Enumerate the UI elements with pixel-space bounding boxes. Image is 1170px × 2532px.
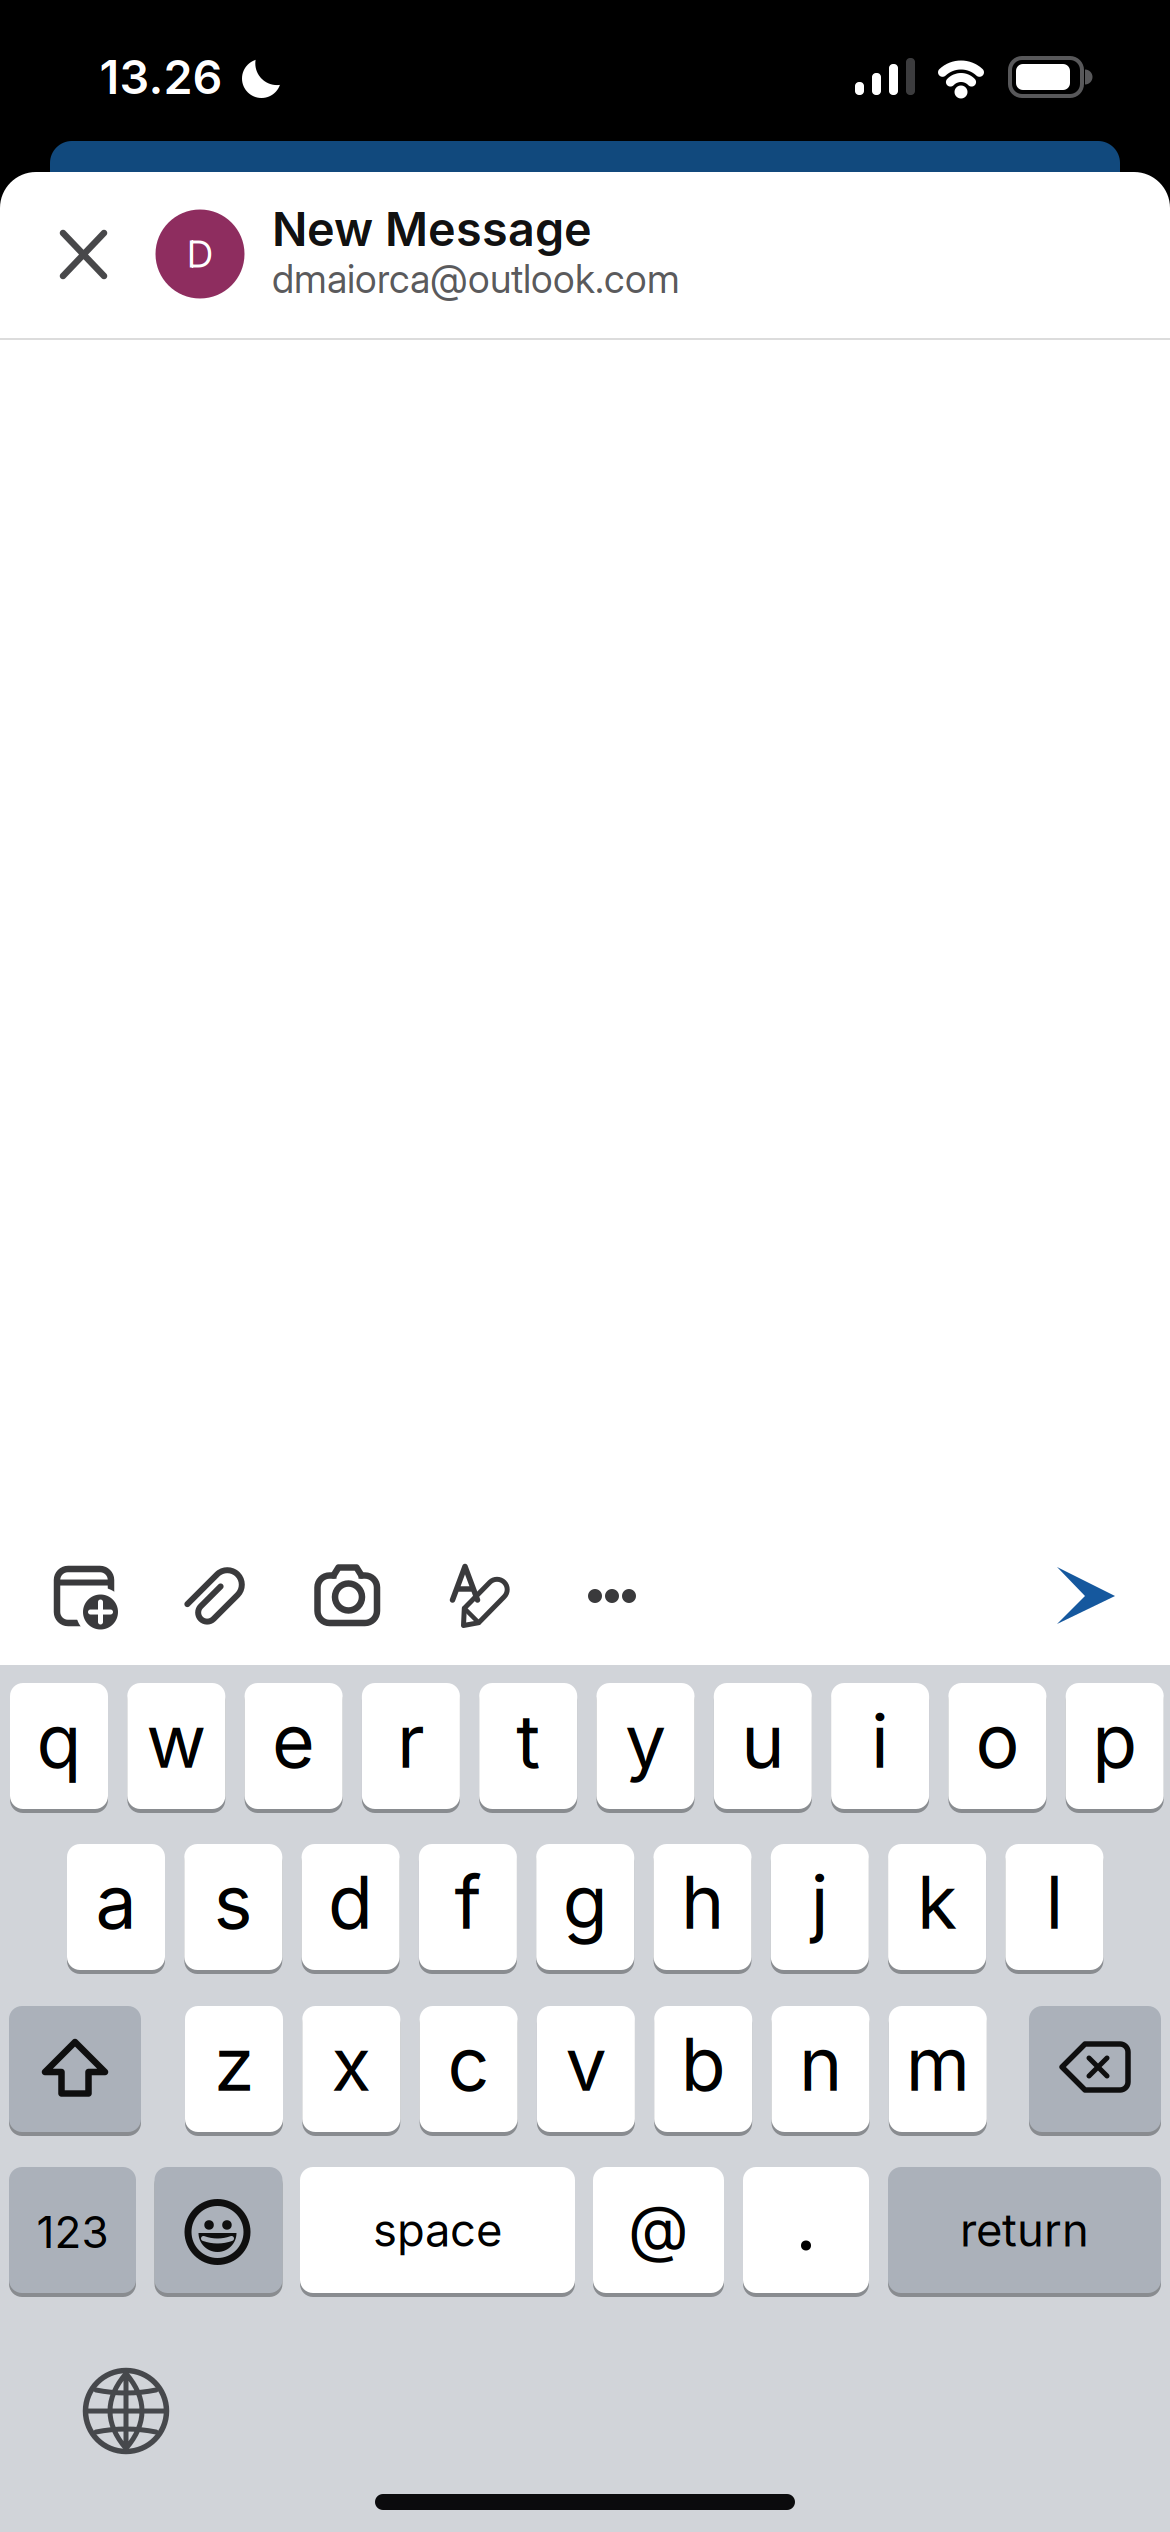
button[interactable]: h (653, 1842, 751, 1972)
staticText: p (1092, 1698, 1137, 1784)
staticText: o (975, 1698, 1019, 1784)
button[interactable]: f (419, 1842, 517, 1972)
button[interactable]: w (127, 1681, 225, 1811)
button[interactable]: n (771, 2004, 869, 2134)
staticText: k (917, 1859, 957, 1945)
button[interactable]: o (948, 1681, 1046, 1811)
staticText: i (871, 1698, 889, 1784)
staticText: h (681, 1859, 724, 1945)
staticText: q (36, 1698, 81, 1784)
staticText: c (448, 2021, 490, 2107)
button[interactable]: Format text (435, 1552, 525, 1642)
staticText: e (272, 1698, 315, 1784)
button[interactable]: . (743, 2165, 869, 2295)
button[interactable]: p (1066, 1681, 1164, 1811)
staticText: 13.26 (99, 49, 222, 105)
button[interactable]: q (10, 1681, 108, 1811)
staticText: b (681, 2021, 726, 2107)
button[interactable]: c (420, 2004, 518, 2134)
button[interactable]: j (771, 1842, 869, 1972)
button[interactable]: @ (593, 2165, 724, 2295)
button[interactable]: s (184, 1842, 282, 1972)
button[interactable]: Delete (1029, 2004, 1161, 2134)
button[interactable]: l (1005, 1842, 1103, 1972)
staticText: return (960, 2203, 1089, 2257)
staticText: w (146, 1698, 206, 1784)
button[interactable]: More compose actions (566, 1551, 656, 1641)
staticText: l (1045, 1859, 1063, 1945)
button[interactable]: i (831, 1681, 929, 1811)
button[interactable]: Take photo (302, 1551, 392, 1641)
button[interactable]: z (185, 2004, 283, 2134)
staticText: x (331, 2021, 371, 2107)
staticText: r (397, 1698, 425, 1784)
button[interactable]: Emoji (154, 2165, 282, 2295)
button[interactable]: Switch keyboard (85, 2370, 167, 2452)
staticText: g (563, 1859, 608, 1945)
button[interactable]: g (536, 1842, 634, 1972)
button[interactable]: r (362, 1681, 460, 1811)
staticText: a (95, 1859, 136, 1945)
staticText: m (906, 2021, 970, 2107)
staticText: u (741, 1698, 784, 1784)
button[interactable]: Attach file (170, 1550, 262, 1642)
staticText: d (328, 1859, 373, 1945)
button[interactable]: x (302, 2004, 400, 2134)
staticText: s (214, 1859, 253, 1945)
button[interactable]: a (67, 1842, 165, 1972)
button[interactable]: return (888, 2165, 1161, 2295)
staticText: j (811, 1859, 829, 1945)
staticText: space (373, 2203, 502, 2257)
button[interactable]: y (596, 1681, 694, 1811)
button[interactable]: e (245, 1681, 343, 1811)
staticText: v (565, 2021, 606, 2107)
button[interactable]: d (302, 1842, 400, 1972)
button[interactable]: v (537, 2004, 635, 2134)
staticText: z (214, 2021, 254, 2107)
button[interactable]: b (654, 2004, 752, 2134)
staticText: y (625, 1698, 666, 1784)
staticText: dmaiorca@outlook.com (272, 256, 680, 302)
staticText: @ (628, 2191, 689, 2265)
button[interactable]: k (888, 1842, 986, 1972)
button[interactable]: Insert availability (43, 1551, 133, 1641)
staticText: D (187, 232, 213, 276)
button[interactable]: u (714, 1681, 812, 1811)
staticText: t (516, 1698, 540, 1784)
button[interactable]: t (479, 1681, 577, 1811)
staticText: New Message (272, 201, 592, 257)
staticText: f (454, 1859, 481, 1945)
button[interactable]: Numbers (9, 2165, 136, 2295)
button[interactable]: m (889, 2004, 987, 2134)
button[interactable]: Send (1041, 1550, 1131, 1640)
staticText: n (799, 2021, 842, 2107)
button[interactable]: Shift (9, 2004, 141, 2134)
button[interactable]: space (300, 2165, 575, 2295)
button[interactable]: Close (38, 209, 128, 299)
staticText: 123 (36, 2206, 108, 2258)
